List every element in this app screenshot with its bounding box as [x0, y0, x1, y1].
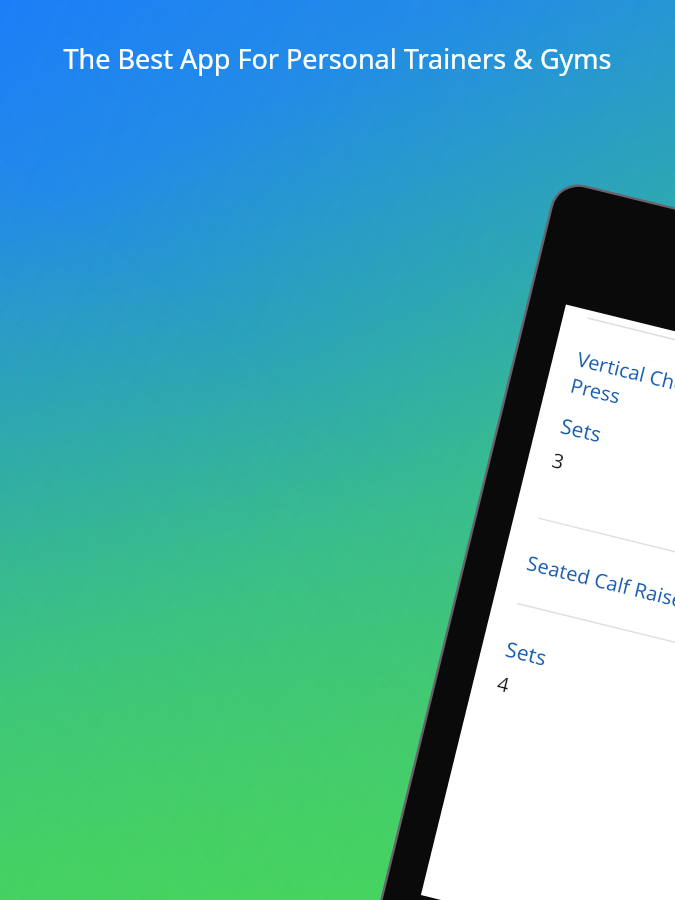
button[interactable]: The Best App For Personal Trainers & Gym…	[42, 40, 633, 77]
staticText: The Best App For Personal Trainers & Gym…	[63, 40, 612, 77]
